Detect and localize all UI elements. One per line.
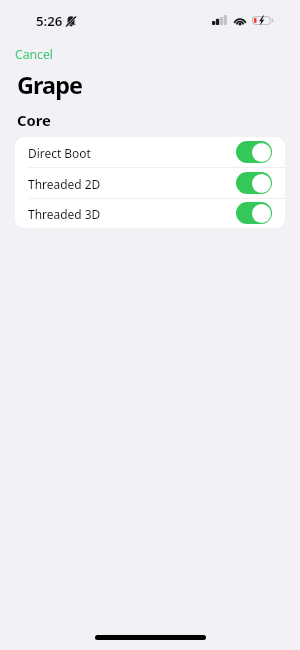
staticText: Threaded 3D: [28, 206, 101, 222]
staticText: 5:26: [36, 12, 63, 30]
staticText: Cancel: [15, 46, 53, 62]
staticText: Core: [17, 110, 51, 130]
button[interactable]: Direct Boot toggle: [236, 141, 272, 163]
button[interactable]: Direct Boot: [15, 137, 285, 168]
staticText: Direct Boot: [28, 145, 91, 161]
button[interactable]: Threaded 2D toggle: [236, 172, 272, 194]
button[interactable]: Threaded 2D: [15, 168, 285, 199]
button[interactable]: Threaded 3D: [15, 199, 285, 228]
staticText: Threaded 2D: [28, 176, 101, 192]
button[interactable]: Cancel: [7, 42, 61, 66]
staticText: Grape: [17, 69, 83, 101]
button[interactable]: Threaded 3D toggle: [236, 202, 272, 224]
